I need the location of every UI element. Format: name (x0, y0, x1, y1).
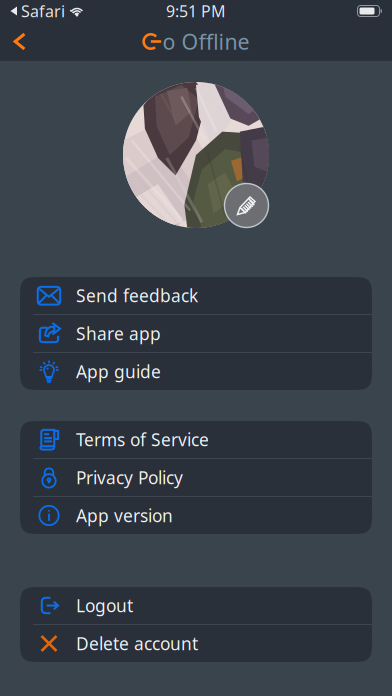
button[interactable]: App version (20, 497, 372, 534)
staticText: Privacy Policy (76, 466, 183, 489)
button[interactable]: Privacy Policy (20, 459, 372, 496)
staticText: Logout (76, 594, 133, 617)
button[interactable]: Send feedback (20, 277, 372, 314)
staticText: Share app (76, 322, 161, 345)
staticText: Terms of Service (76, 428, 209, 451)
button[interactable]: Share app (20, 315, 372, 352)
staticText: o Offline (162, 27, 249, 56)
staticText: Safari (21, 0, 65, 22)
staticText: Send feedback (76, 284, 198, 307)
staticText: App guide (76, 360, 161, 383)
staticText: Delete account (76, 632, 198, 655)
staticText: 9:51 PM (166, 0, 226, 22)
button[interactable]: Edit profile photo (224, 183, 269, 228)
staticText: App version (76, 504, 173, 527)
button[interactable]: Back (0, 23, 40, 59)
button[interactable]: App guide (20, 353, 372, 390)
button[interactable]: Logout (20, 587, 372, 624)
button[interactable]: Terms of Service (20, 421, 372, 458)
button[interactable]: Delete account (20, 625, 372, 662)
